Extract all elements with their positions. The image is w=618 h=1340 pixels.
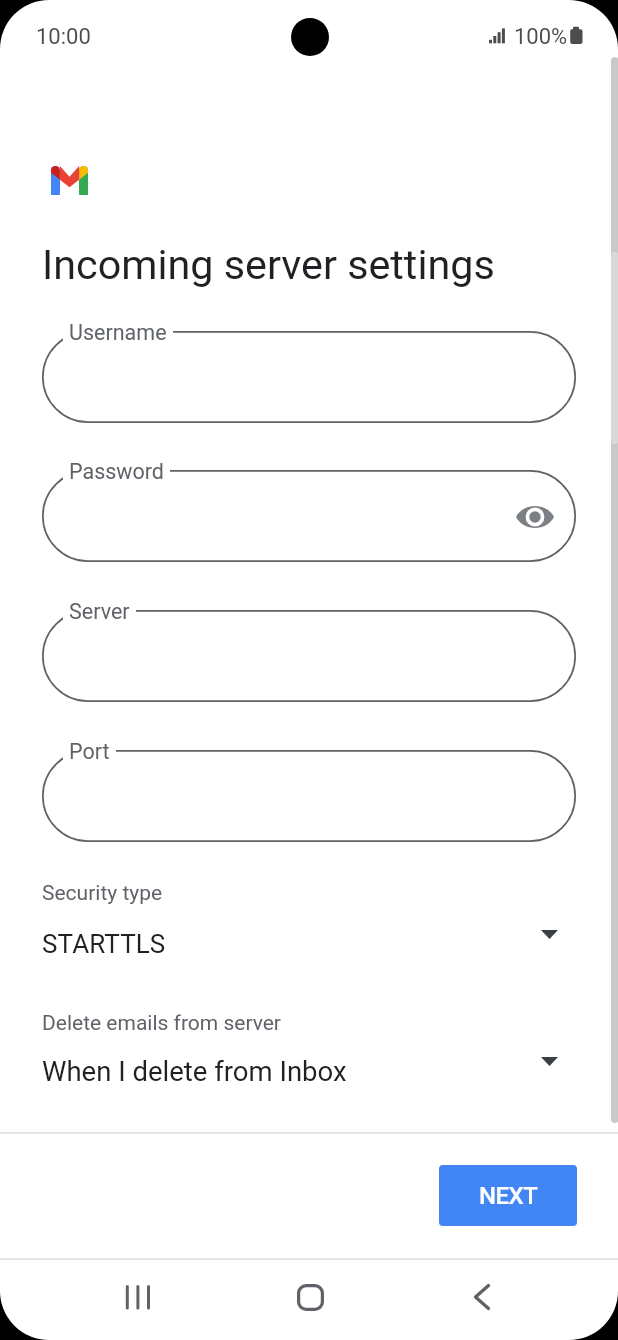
staticText: Server <box>69 599 130 624</box>
staticText: NEXT <box>479 1182 538 1210</box>
staticText: 100% <box>514 24 568 50</box>
staticText: 10:00 <box>36 24 91 50</box>
button[interactable]: Port <box>42 750 576 842</box>
staticText: Port <box>69 739 110 764</box>
button[interactable]: Password <box>42 470 576 562</box>
button[interactable]: Back <box>452 1267 512 1327</box>
staticText: Delete emails from server <box>42 1011 281 1036</box>
staticText: Security type <box>42 881 163 906</box>
staticText: STARTTLS <box>42 929 166 959</box>
button[interactable]: NEXT <box>439 1165 577 1226</box>
button[interactable]: Username <box>42 331 576 423</box>
button[interactable] <box>0 872 618 968</box>
button[interactable]: Show password <box>509 491 561 543</box>
staticText: Password <box>69 459 164 484</box>
staticText: When I delete from Inbox <box>42 1055 347 1087</box>
staticText: Incoming server settings <box>42 241 495 289</box>
button[interactable]: Home <box>280 1267 340 1327</box>
staticText: Username <box>69 320 167 345</box>
button[interactable] <box>0 1000 618 1096</box>
button[interactable]: Recent apps <box>107 1267 167 1327</box>
button[interactable]: Server <box>42 610 576 702</box>
